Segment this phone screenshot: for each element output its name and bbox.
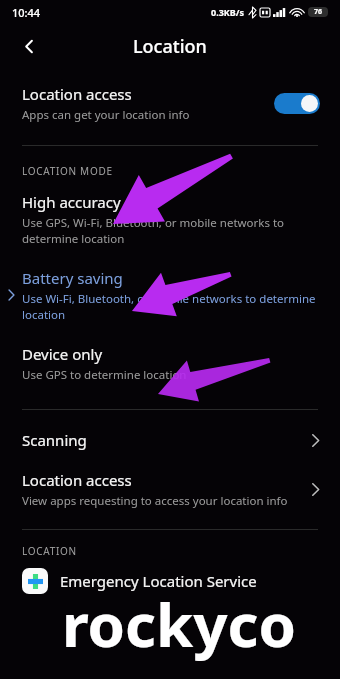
staticText: LOCATION MODE [22, 164, 113, 178]
staticText: Device only [22, 344, 103, 364]
staticText: Use Wi-Fi, Bluetooth, or mobile networks… [22, 291, 316, 322]
staticText: Use GPS to determine location [22, 367, 187, 383]
staticText: Location access [22, 470, 132, 490]
staticText: Emergency Location Service [60, 571, 257, 591]
staticText: High accuracy [22, 192, 121, 212]
staticText: Use GPS, Wi-Fi, Bluetooth, or mobile net… [22, 215, 285, 246]
staticText: 76 [314, 7, 323, 17]
staticText: LOCATION [22, 544, 77, 558]
button[interactable]: Scanning [0, 430, 340, 450]
button[interactable]: Battery saving [0, 268, 340, 322]
button[interactable]: High accuracy [0, 192, 340, 246]
staticText: 10:44 [12, 5, 41, 20]
button[interactable]: Emergency Location Service [0, 568, 340, 594]
staticText: Location [133, 34, 207, 59]
button[interactable]: Device only [0, 344, 340, 383]
staticText: Apps can get your location info [22, 107, 190, 123]
staticText: 0.3KB/s [211, 6, 245, 18]
button[interactable]: Location access [0, 470, 340, 509]
button[interactable]: Location access [0, 78, 340, 129]
button[interactable]: Location access toggle [274, 93, 320, 114]
staticText: Battery saving [22, 268, 123, 288]
button[interactable]: Back [12, 29, 46, 63]
staticText: rockyco [62, 583, 296, 665]
staticText: View apps requesting to access your loca… [22, 493, 288, 509]
staticText: Scanning [22, 430, 87, 450]
staticText: Location access [22, 84, 132, 104]
